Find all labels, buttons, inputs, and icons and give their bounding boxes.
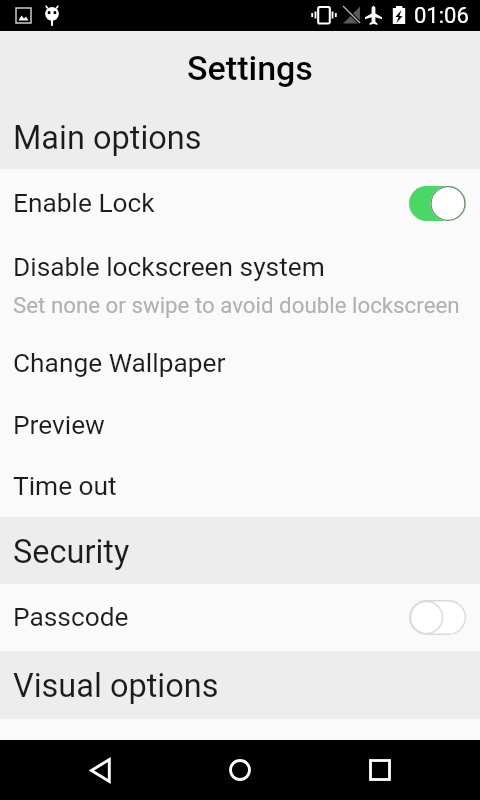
button[interactable]: Time out: [0, 455, 480, 517]
staticText: Preview: [13, 410, 105, 441]
button[interactable]: Switch off: [409, 600, 466, 635]
staticText: 01:06: [414, 3, 469, 29]
button[interactable]: Enable Lock: [0, 169, 480, 237]
button[interactable]: Disable lockscreen system: [0, 237, 480, 332]
button[interactable]: Home: [200, 740, 280, 800]
staticText: Security: [13, 533, 130, 571]
button[interactable]: Settings: [0, 31, 480, 101]
staticText: Enable Lock: [13, 188, 155, 219]
button[interactable]: Preview: [0, 395, 480, 455]
staticText: Visual options: [13, 667, 219, 705]
staticText: Set none or swipe to avoid double locksc…: [13, 292, 460, 318]
staticText: Main options: [13, 119, 202, 157]
button[interactable]: Change Wallpaper: [0, 332, 480, 395]
staticText: Disable lockscreen system: [13, 252, 325, 283]
staticText: Change Wallpaper: [13, 348, 226, 379]
staticText: Settings: [187, 48, 313, 88]
staticText: Passcode: [13, 602, 129, 633]
button[interactable]: Switch on: [409, 186, 466, 221]
button[interactable]: Recent apps: [280, 740, 480, 800]
staticText: Time out: [13, 471, 117, 502]
button[interactable]: Back: [0, 740, 200, 800]
button[interactable]: Passcode: [0, 584, 480, 651]
